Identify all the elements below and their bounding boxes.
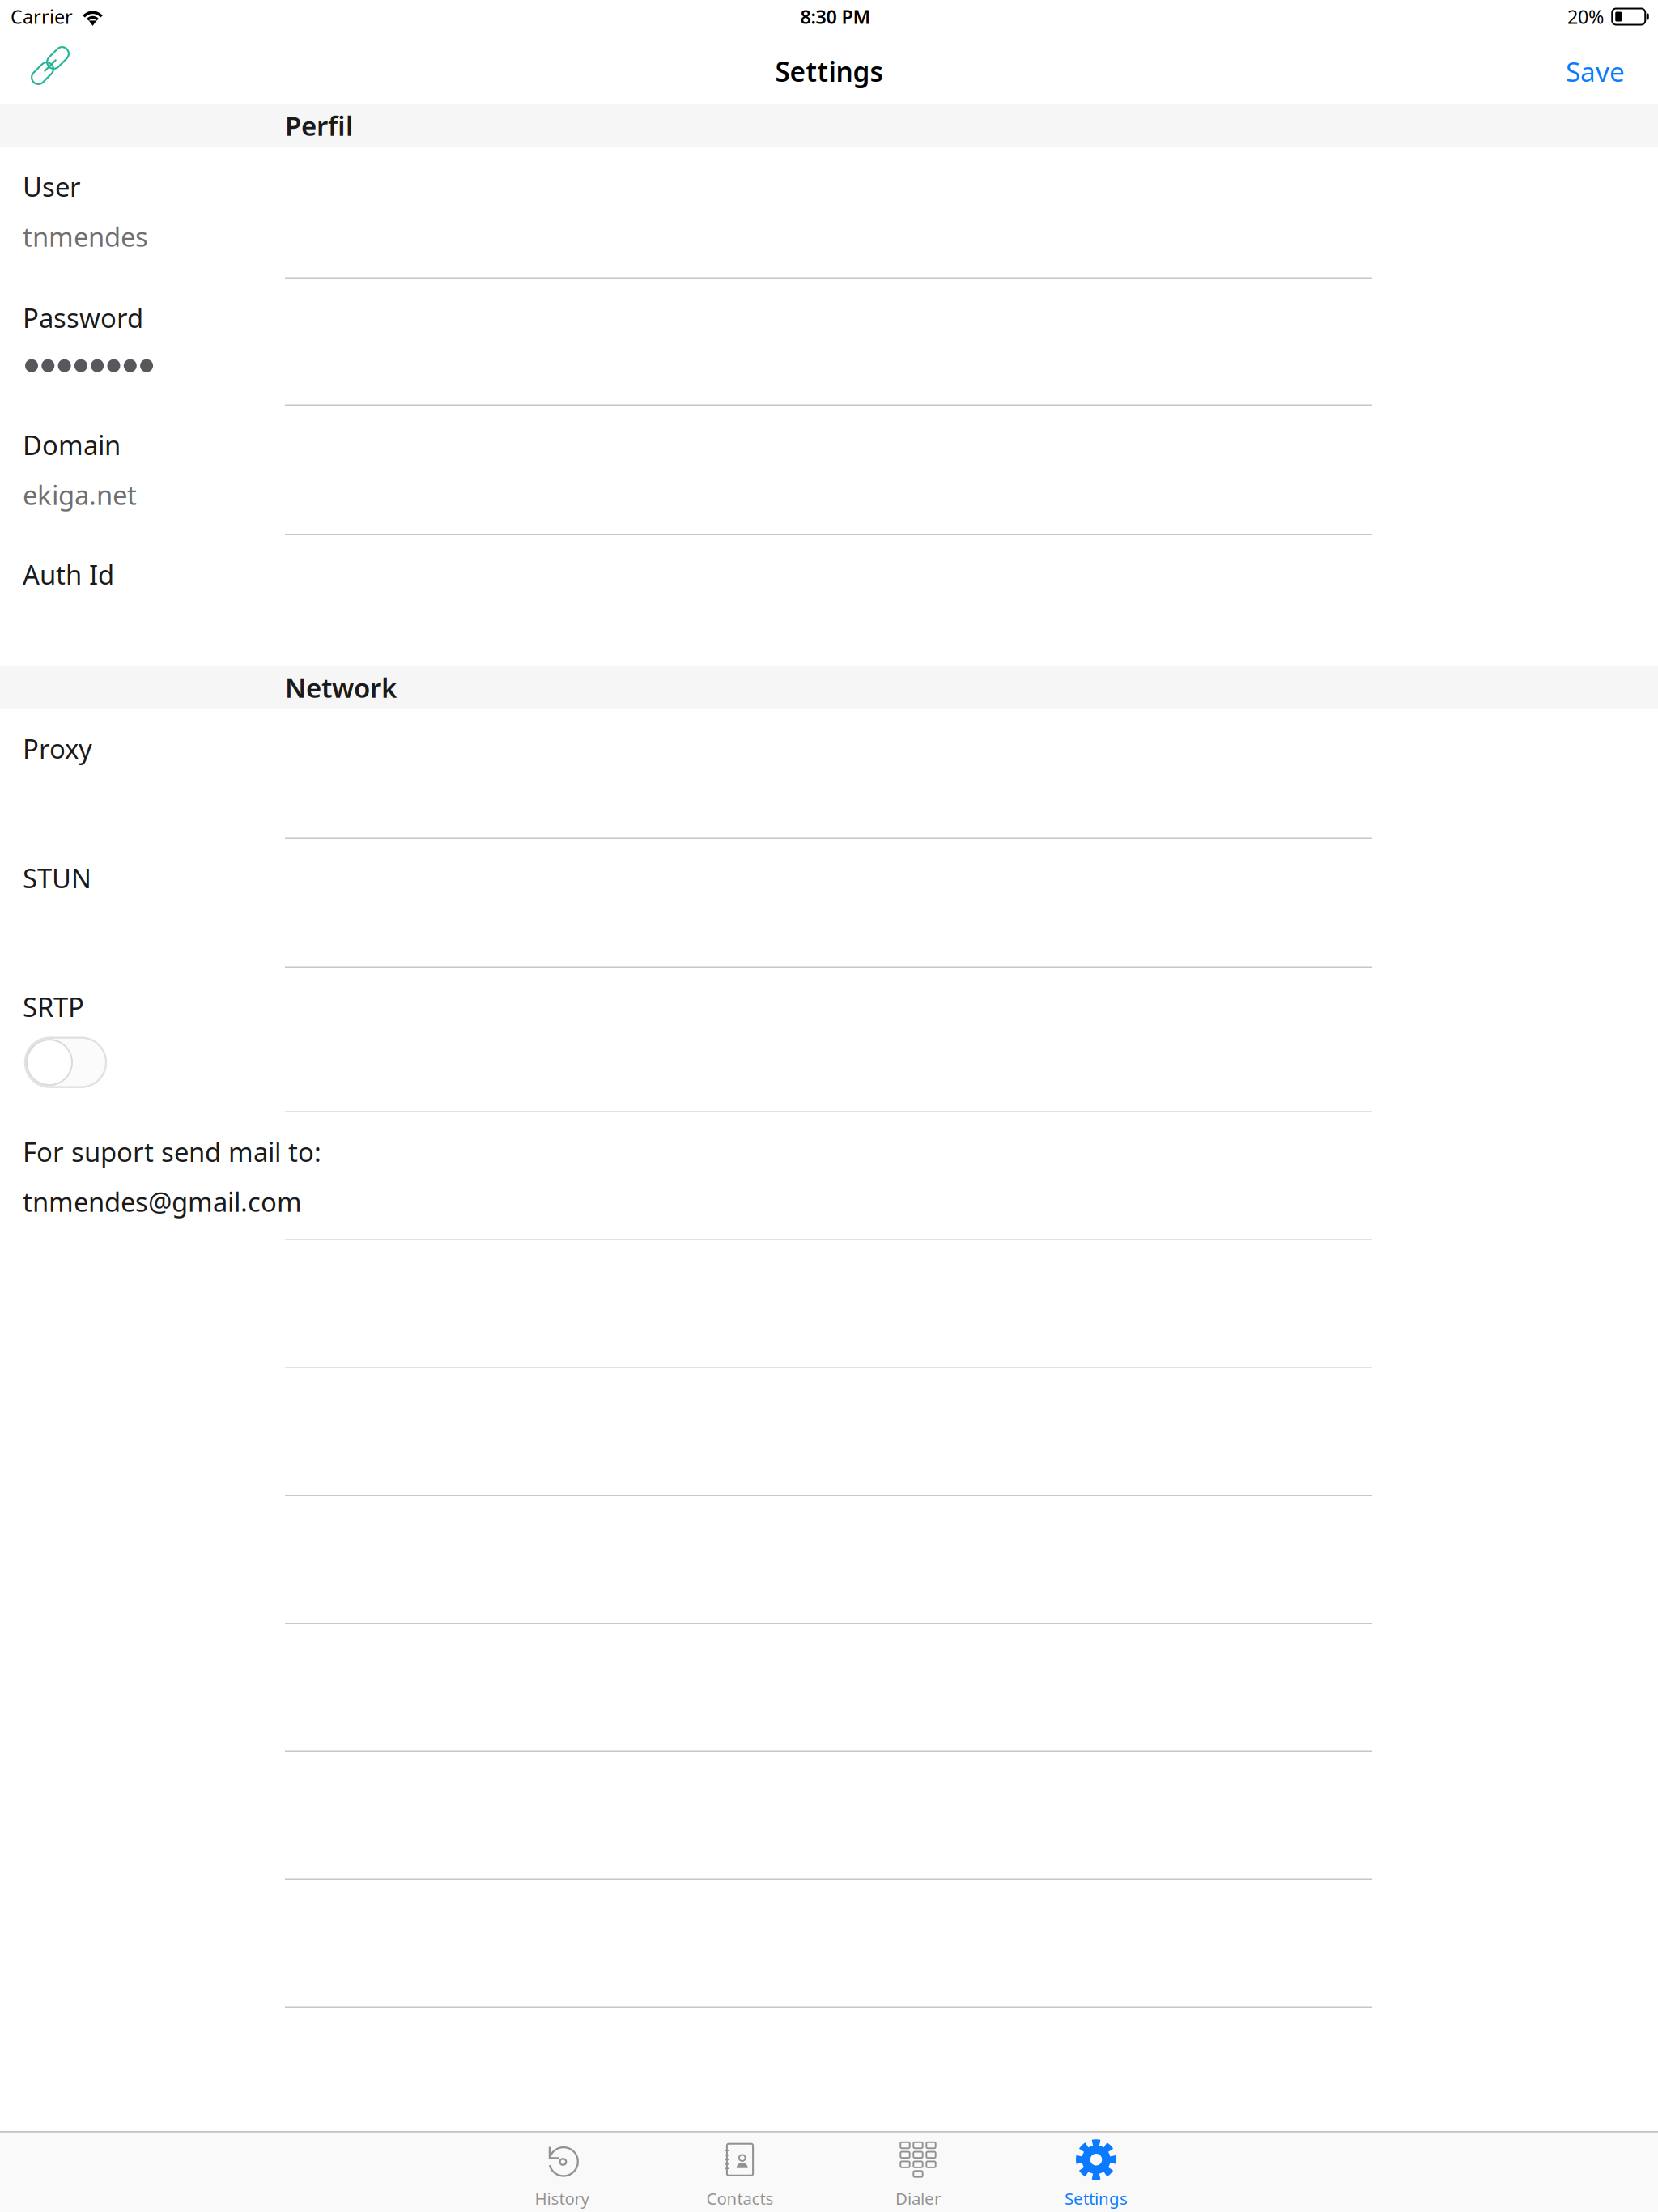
button[interactable]: Save xyxy=(1546,39,1658,104)
button[interactable]: History xyxy=(473,2132,651,2212)
button[interactable]: Proxy xyxy=(0,709,1658,839)
button[interactable]: User xyxy=(0,147,1658,279)
button[interactable]: For suport send mail to: xyxy=(0,1112,1658,1240)
staticText: Carrier xyxy=(11,4,73,29)
staticText: Domain xyxy=(23,427,121,463)
staticText: History xyxy=(535,2187,589,2210)
staticText: ekiga.net xyxy=(23,477,137,513)
staticText: For suport send mail to: xyxy=(23,1134,321,1170)
staticText: Auth Id xyxy=(23,556,114,592)
staticText: Proxy xyxy=(23,730,92,767)
button[interactable]: SRTP xyxy=(0,968,1658,1112)
staticText: Save xyxy=(1566,53,1625,90)
staticText: Contacts xyxy=(706,2187,774,2210)
staticText: 20% xyxy=(1567,4,1604,29)
button[interactable]: Registration status xyxy=(0,39,88,104)
staticText: Dialer xyxy=(895,2187,941,2210)
staticText: Settings xyxy=(1065,2187,1128,2210)
button[interactable]: Auth Id xyxy=(0,535,1658,666)
button[interactable]: Password xyxy=(0,279,1658,406)
staticText: User xyxy=(23,168,81,205)
button[interactable]: Contacts xyxy=(651,2132,829,2212)
staticText: Password xyxy=(23,300,143,336)
staticText: STUN xyxy=(23,860,91,896)
button[interactable]: Settings xyxy=(1007,2132,1185,2212)
staticText: SRTP xyxy=(23,989,84,1025)
staticText: 8:30 PM xyxy=(800,4,871,29)
staticText: tnmendes@gmail.com xyxy=(23,1183,302,1220)
button[interactable]: Domain xyxy=(0,406,1658,535)
staticText: tnmendes xyxy=(23,218,148,255)
staticText: Perfil xyxy=(285,107,353,144)
staticText: Network xyxy=(285,669,397,706)
staticText: Settings xyxy=(775,53,883,90)
button[interactable]: STUN xyxy=(0,839,1658,968)
button[interactable]: Dialer xyxy=(829,2132,1007,2212)
